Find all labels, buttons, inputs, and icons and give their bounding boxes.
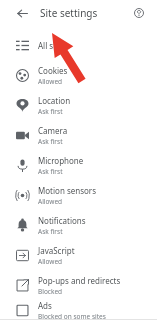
staticText: Motion sensors xyxy=(38,185,97,196)
staticText: Location xyxy=(38,95,71,106)
button[interactable]: Help xyxy=(129,3,149,23)
staticText: Allowed xyxy=(38,257,63,266)
staticText: All sites xyxy=(38,40,67,51)
button[interactable]: Notifications xyxy=(0,210,157,240)
staticText: Camera xyxy=(38,125,68,136)
staticText: Pop-ups and redirects xyxy=(38,275,121,286)
staticText: JavaScript xyxy=(38,245,75,256)
button[interactable]: Back xyxy=(12,3,32,23)
staticText: Ask first xyxy=(38,137,63,146)
button[interactable]: Cookies xyxy=(0,60,157,90)
button[interactable]: Ads xyxy=(0,300,157,320)
staticText: Microphone xyxy=(38,155,84,166)
button[interactable]: Microphone xyxy=(0,150,157,180)
staticText: Ads xyxy=(38,300,52,311)
button[interactable]: JavaScript xyxy=(0,240,157,270)
button[interactable]: Camera xyxy=(0,120,157,150)
staticText: Ask first xyxy=(38,107,63,116)
staticText: Ask first xyxy=(38,227,63,236)
button[interactable]: Pop-ups and redirects xyxy=(0,270,157,300)
button[interactable]: Location xyxy=(0,90,157,120)
staticText: Blocked xyxy=(38,287,63,296)
staticText: Blocked on some sites xyxy=(38,312,106,320)
button[interactable]: All sites xyxy=(0,30,157,60)
staticText: Allowed xyxy=(38,197,63,206)
button[interactable]: Motion sensors xyxy=(0,180,157,210)
staticText: Cookies xyxy=(38,65,68,76)
staticText: Site settings xyxy=(40,6,98,20)
staticText: Notifications xyxy=(38,215,86,226)
staticText: Ask first xyxy=(38,167,63,176)
staticText: Allowed xyxy=(38,77,63,86)
